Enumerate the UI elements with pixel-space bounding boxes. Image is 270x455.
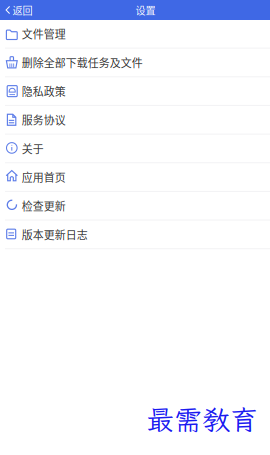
staticText: 关于 xyxy=(22,140,44,156)
staticText: 检查更新 xyxy=(22,198,66,214)
button[interactable]: 文件管理 xyxy=(0,20,270,49)
staticText: 设置 xyxy=(135,3,155,17)
button[interactable]: 返回 xyxy=(0,0,32,20)
staticText: 最需教育 xyxy=(146,401,258,438)
button[interactable]: 隐私政策 xyxy=(0,77,270,106)
staticText: 删除全部下载任务及文件 xyxy=(22,55,143,70)
staticText: 文件管理 xyxy=(22,26,66,42)
staticText: 隐私政策 xyxy=(22,83,66,99)
staticText: 版本更新日志 xyxy=(22,226,88,242)
staticText: 返回 xyxy=(12,3,32,17)
button[interactable]: 服务协议 xyxy=(0,106,270,134)
button[interactable]: 删除全部下载任务及文件 xyxy=(0,49,270,77)
button[interactable]: 应用首页 xyxy=(0,163,270,192)
staticText: 服务协议 xyxy=(22,112,66,128)
button[interactable]: 关于 xyxy=(0,135,270,163)
button[interactable]: 检查更新 xyxy=(0,192,270,220)
staticText: 应用首页 xyxy=(22,169,66,185)
button[interactable]: 版本更新日志 xyxy=(0,220,270,249)
